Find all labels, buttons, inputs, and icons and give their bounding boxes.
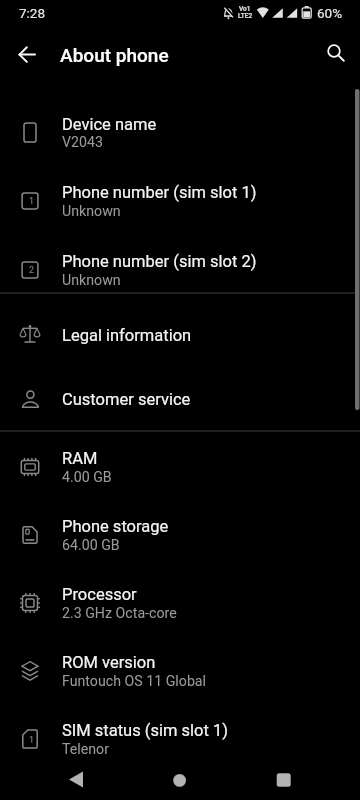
staticText: 64.00 GB — [62, 537, 120, 554]
staticText: SIM status (sim slot 1) — [62, 721, 228, 740]
staticText: Unknown — [62, 203, 121, 220]
staticText: Device name — [62, 115, 157, 134]
staticText: ROM version — [62, 653, 156, 672]
staticText: LTE2 — [238, 12, 253, 20]
staticText: V2043 — [62, 134, 103, 151]
staticText: RAM — [62, 449, 98, 468]
staticText: 2 — [29, 265, 35, 276]
staticText: 4.00 GB — [62, 469, 112, 486]
staticText: Phone number (sim slot 2) — [62, 252, 257, 271]
staticText: 2.3 GHz Octa-core — [62, 605, 177, 622]
staticText: 1 — [29, 735, 35, 746]
staticText: Phone storage — [62, 517, 169, 536]
staticText: About phone — [60, 44, 169, 66]
staticText: Telenor — [62, 741, 110, 758]
staticText: Legal information — [62, 326, 192, 345]
staticText: 1 — [29, 196, 35, 207]
staticText: Processor — [62, 585, 137, 604]
staticText: 60% — [317, 5, 343, 21]
staticText: Vo1 — [239, 5, 251, 13]
staticText: Unknown — [62, 272, 121, 289]
staticText: Funtouch OS 11 Global — [62, 673, 207, 690]
staticText: Phone number (sim slot 1) — [62, 183, 257, 202]
staticText: Customer service — [62, 390, 191, 409]
staticText: 7:28 — [19, 5, 46, 21]
